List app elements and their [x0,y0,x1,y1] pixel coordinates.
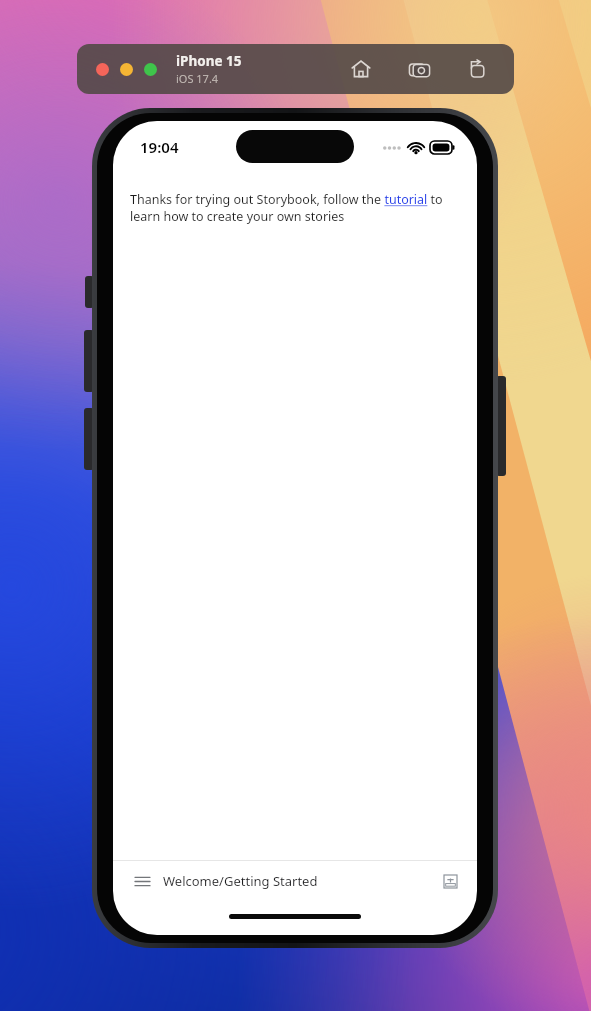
button[interactable]: Welcome/Getting Started [163,872,318,890]
button[interactable]: Screenshot [404,54,434,84]
button[interactable]: Menu [129,868,155,894]
staticText: Thanks for trying out Storybook, follow … [130,191,460,224]
button[interactable]: Close [96,63,109,76]
button[interactable]: Minimize [120,63,133,76]
button[interactable]: Record [462,54,492,84]
staticText: iOS 17.4 [176,71,219,86]
staticText: 19:04 [140,137,179,157]
button[interactable]: Maximize [144,63,157,76]
button[interactable]: Zoom [439,870,461,892]
button[interactable]: Home [346,54,376,84]
staticText: iPhone 15 [176,52,242,70]
